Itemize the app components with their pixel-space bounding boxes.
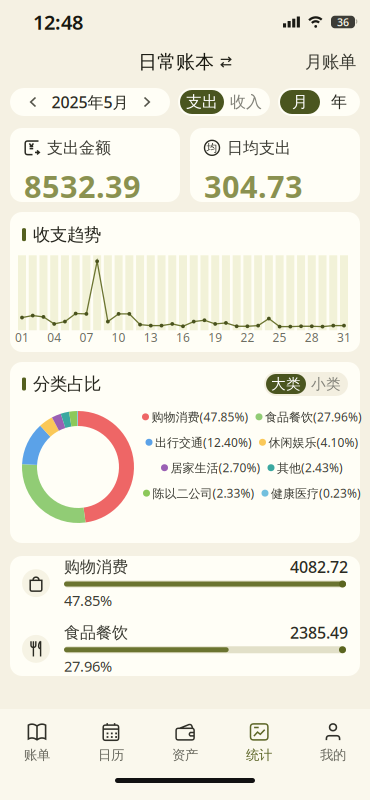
staticText: 资产: [172, 747, 198, 763]
button[interactable]: 日历: [74, 719, 148, 765]
staticText: 休闲娱乐(4.10%): [268, 434, 358, 450]
staticText: 4082.72: [290, 556, 348, 577]
staticText: 陈以二公司(2.33%): [152, 485, 254, 501]
staticText: 居家生活(2.70%): [170, 460, 260, 476]
staticText: 25: [273, 329, 287, 345]
staticText: 31: [337, 329, 351, 345]
staticText: 支出: [186, 92, 218, 112]
staticText: 分类占比: [33, 373, 101, 395]
staticText: 健康医疗(0.23%): [271, 485, 361, 501]
staticText: 07: [79, 329, 93, 345]
button[interactable]: 日常账本: [138, 50, 232, 73]
staticText: 月账单: [305, 51, 356, 73]
staticText: 出行交通(12.40%): [155, 434, 252, 450]
button[interactable]: 月: [280, 90, 320, 114]
button[interactable]: 收入: [224, 90, 268, 114]
staticText: 其他(2.43%): [277, 460, 343, 476]
staticText: 8532.39: [24, 166, 141, 206]
staticText: 食品餐饮(27.96%): [265, 409, 362, 425]
staticText: 28: [305, 329, 319, 345]
staticText: 01: [15, 329, 29, 345]
staticText: 收支趋势: [33, 224, 101, 245]
staticText: 大类: [271, 375, 301, 393]
staticText: 购物消费: [64, 557, 128, 577]
button[interactable]: 年: [320, 90, 358, 114]
staticText: 均: [206, 141, 217, 154]
button[interactable]: 我的: [296, 719, 370, 765]
staticText: 购物消费(47.85%): [151, 409, 248, 425]
staticText: 支出金额: [47, 138, 111, 158]
button[interactable]: 月账单: [305, 51, 370, 73]
button[interactable]: 账单: [0, 719, 74, 765]
staticText: 日均支出: [227, 138, 291, 158]
button[interactable]: [18, 89, 48, 115]
staticText: 36: [337, 15, 349, 29]
staticText: 19: [208, 329, 222, 345]
staticText: 统计: [246, 747, 272, 763]
button[interactable]: 小类: [306, 374, 346, 394]
staticText: 月: [292, 92, 308, 112]
staticText: 日常账本: [138, 50, 214, 73]
staticText: 2025年5月: [51, 91, 128, 113]
staticText: 年: [331, 92, 347, 112]
staticText: 47.85%: [64, 590, 112, 610]
button[interactable]: 资产: [148, 719, 222, 765]
staticText: 22: [240, 329, 254, 345]
staticText: 收入: [230, 92, 262, 112]
staticText: 2385.49: [290, 622, 348, 643]
staticText: 我的: [320, 747, 346, 763]
button[interactable]: 大类: [266, 374, 306, 394]
staticText: 10: [112, 329, 126, 345]
button[interactable]: 支出: [180, 90, 224, 114]
staticText: 12:48: [33, 9, 83, 35]
staticText: 304.73: [204, 166, 303, 206]
staticText: 27.96%: [64, 656, 112, 676]
staticText: 小类: [311, 375, 341, 393]
staticText: 04: [47, 329, 61, 345]
staticText: 13: [144, 329, 158, 345]
button[interactable]: [132, 89, 162, 115]
button[interactable]: 统计: [222, 719, 296, 765]
staticText: 账单: [24, 747, 50, 763]
staticText: 日历: [98, 747, 124, 763]
staticText: 16: [176, 329, 190, 345]
staticText: 食品餐饮: [64, 623, 128, 642]
